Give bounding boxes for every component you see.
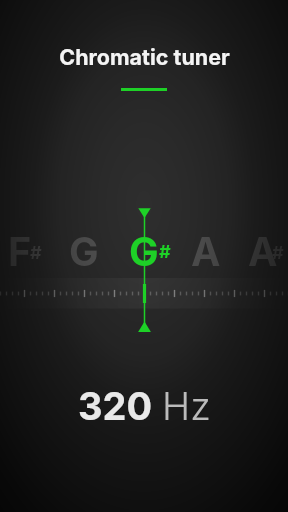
- button[interactable]: 320: [0, 383, 288, 429]
- button[interactable]: Chromatic tuner: [0, 44, 288, 70]
- staticText: Hz: [162, 383, 211, 429]
- staticText: #: [30, 242, 42, 264]
- staticText: Chromatic tuner: [59, 44, 230, 70]
- staticText: A: [191, 228, 221, 276]
- staticText: F: [8, 228, 32, 276]
- staticText: #: [159, 241, 171, 263]
- staticText: 320: [78, 383, 153, 429]
- staticText: A: [248, 228, 278, 276]
- button[interactable]: Current note G sharp: [126, 226, 174, 272]
- staticText: #: [272, 242, 284, 264]
- staticText: G: [129, 228, 159, 276]
- staticText: G: [69, 228, 99, 276]
